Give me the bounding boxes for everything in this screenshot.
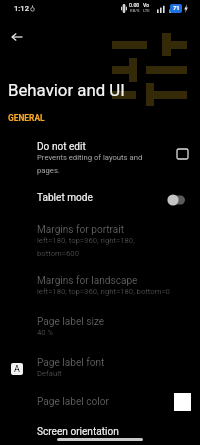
staticText: Behavior and UI: [8, 80, 125, 100]
staticText: left=180, top=360, right=180, bottom=600: [37, 236, 170, 257]
button[interactable]: Margins for portrait: [0, 224, 200, 268]
button[interactable]: Tablet mode, switch, off: [165, 193, 189, 207]
staticText: 71: [173, 5, 180, 12]
button[interactable]: Screen orientation: [0, 426, 200, 445]
staticText: Vo: [143, 2, 150, 8]
button[interactable]: A: [0, 357, 200, 393]
staticText: Prevents editing of layouts and pages.: [37, 153, 162, 174]
staticText: Tablet mode: [37, 192, 93, 204]
button[interactable]: Do not edit, checkbox: [172, 144, 192, 164]
staticText: Do not edit: [37, 141, 86, 153]
staticText: Screen orientation: [37, 426, 119, 438]
staticText: Default: [37, 369, 62, 378]
button[interactable]: Tablet mode: [0, 192, 200, 222]
staticText: 1:12: [14, 4, 29, 13]
button[interactable]: Back: [5, 25, 29, 49]
staticText: Page label font: [37, 357, 105, 369]
staticText: Margins for landscape: [37, 275, 138, 287]
staticText: Page label color: [37, 396, 109, 408]
staticText: A: [14, 364, 20, 375]
button[interactable]: Margins for landscape: [0, 275, 200, 319]
staticText: 40 %: [37, 328, 54, 337]
button[interactable]: Page label color: [0, 396, 200, 426]
button[interactable]: Do not edit: [0, 141, 200, 185]
staticText: LTE: [143, 8, 150, 13]
staticText: left=180, top=360, right=180, bottom=0: [37, 287, 170, 296]
button[interactable]: Page label size: [0, 316, 200, 352]
staticText: Margins for portrait: [37, 224, 125, 236]
staticText: 0.00: [129, 2, 140, 8]
staticText: Page label size: [37, 316, 105, 328]
staticText: KB/S: [130, 8, 140, 13]
staticText: GENERAL: [8, 113, 45, 123]
